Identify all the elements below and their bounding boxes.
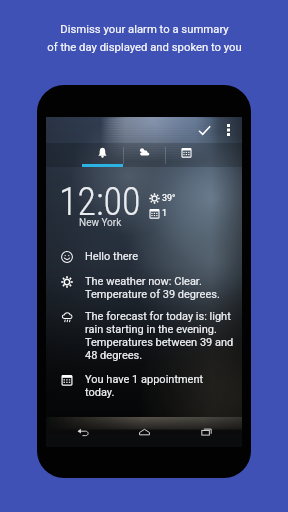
button[interactable]: Hello there bbox=[46, 245, 242, 268]
staticText: Temperatures between 39 and bbox=[85, 336, 234, 349]
staticText: You have 1 appointment bbox=[85, 373, 204, 386]
button[interactable]: Back bbox=[58, 418, 108, 447]
staticText: The forecast for today is: light bbox=[85, 310, 231, 323]
button[interactable]: Weather bbox=[124, 143, 165, 167]
staticText: New York bbox=[79, 217, 122, 229]
staticText: Temperature of 39 degrees. bbox=[85, 288, 220, 301]
button[interactable]: You have 1 appointment bbox=[46, 368, 242, 404]
staticText: rain starting in the evening. bbox=[85, 323, 217, 336]
staticText: 39° bbox=[162, 193, 176, 204]
staticText: Hello there bbox=[85, 250, 138, 263]
button[interactable]: More options bbox=[218, 117, 238, 143]
staticText: 48 degrees. bbox=[85, 349, 143, 362]
button[interactable]: Recent apps bbox=[181, 418, 231, 447]
button[interactable]: Calendar bbox=[166, 143, 207, 167]
button[interactable]: Done bbox=[190, 117, 218, 143]
staticText: today. bbox=[85, 386, 115, 399]
button[interactable]: The weather now: Clear. bbox=[46, 270, 242, 306]
button[interactable]: The forecast for today is: light bbox=[46, 305, 242, 368]
staticText: of the day displayed and spoken to you bbox=[47, 41, 242, 54]
button[interactable]: Alarms bbox=[82, 143, 123, 167]
staticText: Dismiss your alarm to a summary bbox=[60, 23, 229, 36]
staticText: 12:00 bbox=[59, 180, 141, 225]
staticText: The weather now: Clear. bbox=[85, 275, 202, 288]
button[interactable]: Home bbox=[119, 418, 169, 447]
staticText: 1 bbox=[162, 208, 168, 219]
